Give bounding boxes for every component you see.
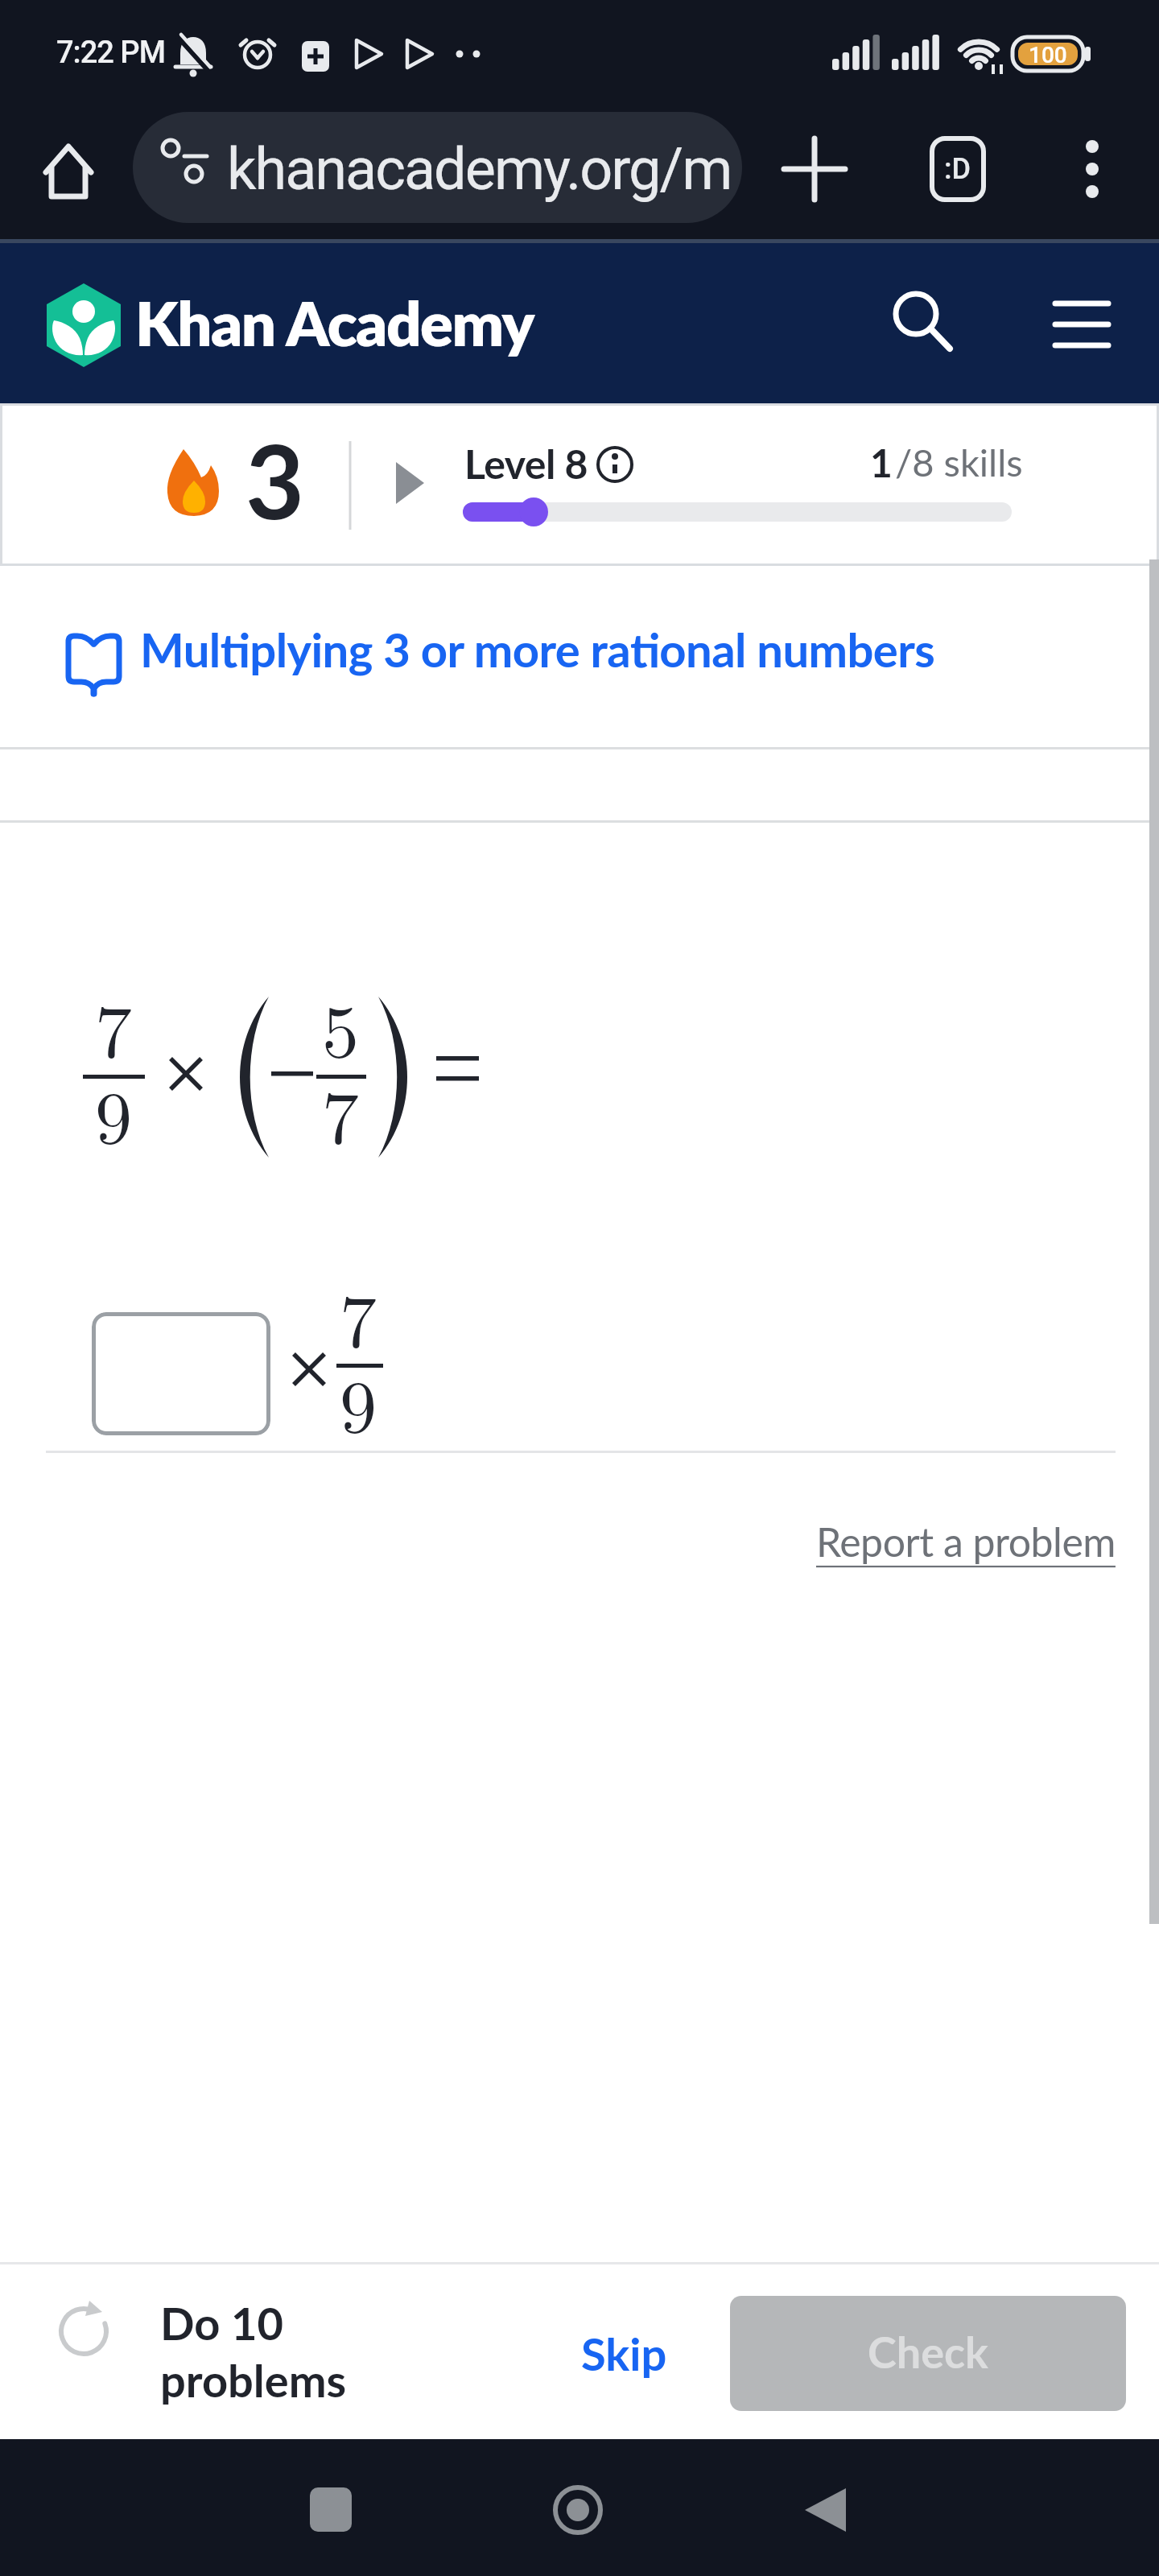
staticText: Level 8 <box>464 440 588 485</box>
staticText: 7 <box>95 973 132 1047</box>
button[interactable] <box>785 2463 873 2552</box>
button[interactable]: Report a problem <box>810 1517 1116 1566</box>
staticText: /8 skills <box>895 440 1023 485</box>
staticText: 7 <box>322 1059 359 1133</box>
button[interactable] <box>286 2463 374 2552</box>
button[interactable] <box>877 278 966 366</box>
staticText: Do 10 problems <box>160 2296 347 2407</box>
button[interactable] <box>92 1312 270 1435</box>
staticText: Check <box>868 2326 988 2378</box>
button[interactable]: Skip <box>571 2326 676 2376</box>
button[interactable] <box>32 129 113 209</box>
staticText: Khan Academy <box>135 286 534 359</box>
button[interactable] <box>1042 282 1123 362</box>
button[interactable] <box>48 596 950 716</box>
staticText: Report a problem <box>816 1517 1116 1566</box>
staticText: 1 <box>870 440 893 485</box>
button[interactable] <box>0 403 1159 566</box>
staticText: khanacademy.org/m <box>227 135 728 203</box>
staticText: 9 <box>95 1059 132 1133</box>
button[interactable] <box>773 129 853 209</box>
button[interactable] <box>531 2463 620 2552</box>
staticText: 5 <box>322 973 359 1047</box>
staticText: 100 <box>1029 42 1067 68</box>
button[interactable]: Multiplying 3 or more rational numbers <box>140 621 1025 670</box>
button[interactable] <box>133 112 742 223</box>
staticText: Multiplying 3 or more rational numbers <box>140 621 935 670</box>
staticText: 9 <box>340 1348 377 1422</box>
button[interactable] <box>32 250 547 394</box>
staticText: 3 <box>245 419 305 508</box>
button[interactable] <box>1054 125 1131 209</box>
staticText: 7:22 PM <box>56 35 165 71</box>
staticText: Skip <box>581 2326 667 2376</box>
button[interactable] <box>918 125 998 205</box>
button[interactable] <box>730 2296 1126 2411</box>
staticText: 7 <box>340 1263 377 1337</box>
staticText: :D <box>944 152 971 186</box>
